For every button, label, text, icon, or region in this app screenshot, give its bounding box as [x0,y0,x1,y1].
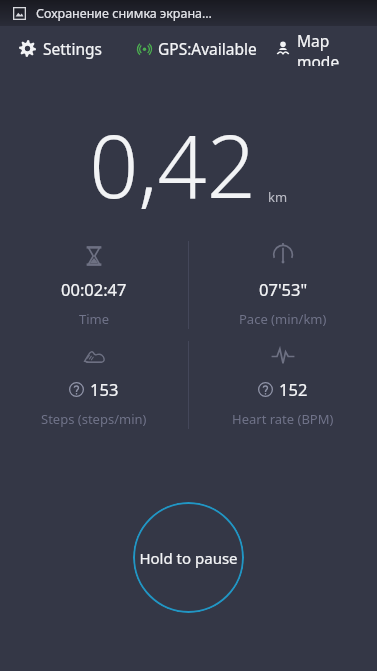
staticText: 00:02:47 [61,278,127,300]
staticText: Сохранение снимка экрана… [36,5,212,22]
staticText: Time [79,310,110,328]
button[interactable]: 152 [189,337,377,433]
staticText: Map mode [297,30,375,66]
button[interactable]: Map mode [273,26,377,70]
staticText: Steps (steps/min) [41,410,147,428]
staticText: Settings [43,38,102,59]
staticText: GPS:Available [158,38,257,59]
staticText: 152 [279,378,308,400]
staticText: 07'53" [259,278,308,300]
staticText: Pace (min/km) [239,310,327,328]
button[interactable]: Hold to pause [133,502,244,613]
staticText: km [268,188,288,206]
staticText: Heart rate (BPM) [232,410,334,428]
staticText: Hold to pause [139,548,238,568]
staticText: 0,42 [89,106,256,223]
button[interactable]: Settings [17,34,104,63]
button[interactable]: 153 [0,337,188,433]
button[interactable]: 00:02:47 [0,237,188,333]
button[interactable]: 07'53" [189,237,377,333]
staticText: 153 [90,378,119,400]
button[interactable]: GPS:Available [135,34,259,63]
